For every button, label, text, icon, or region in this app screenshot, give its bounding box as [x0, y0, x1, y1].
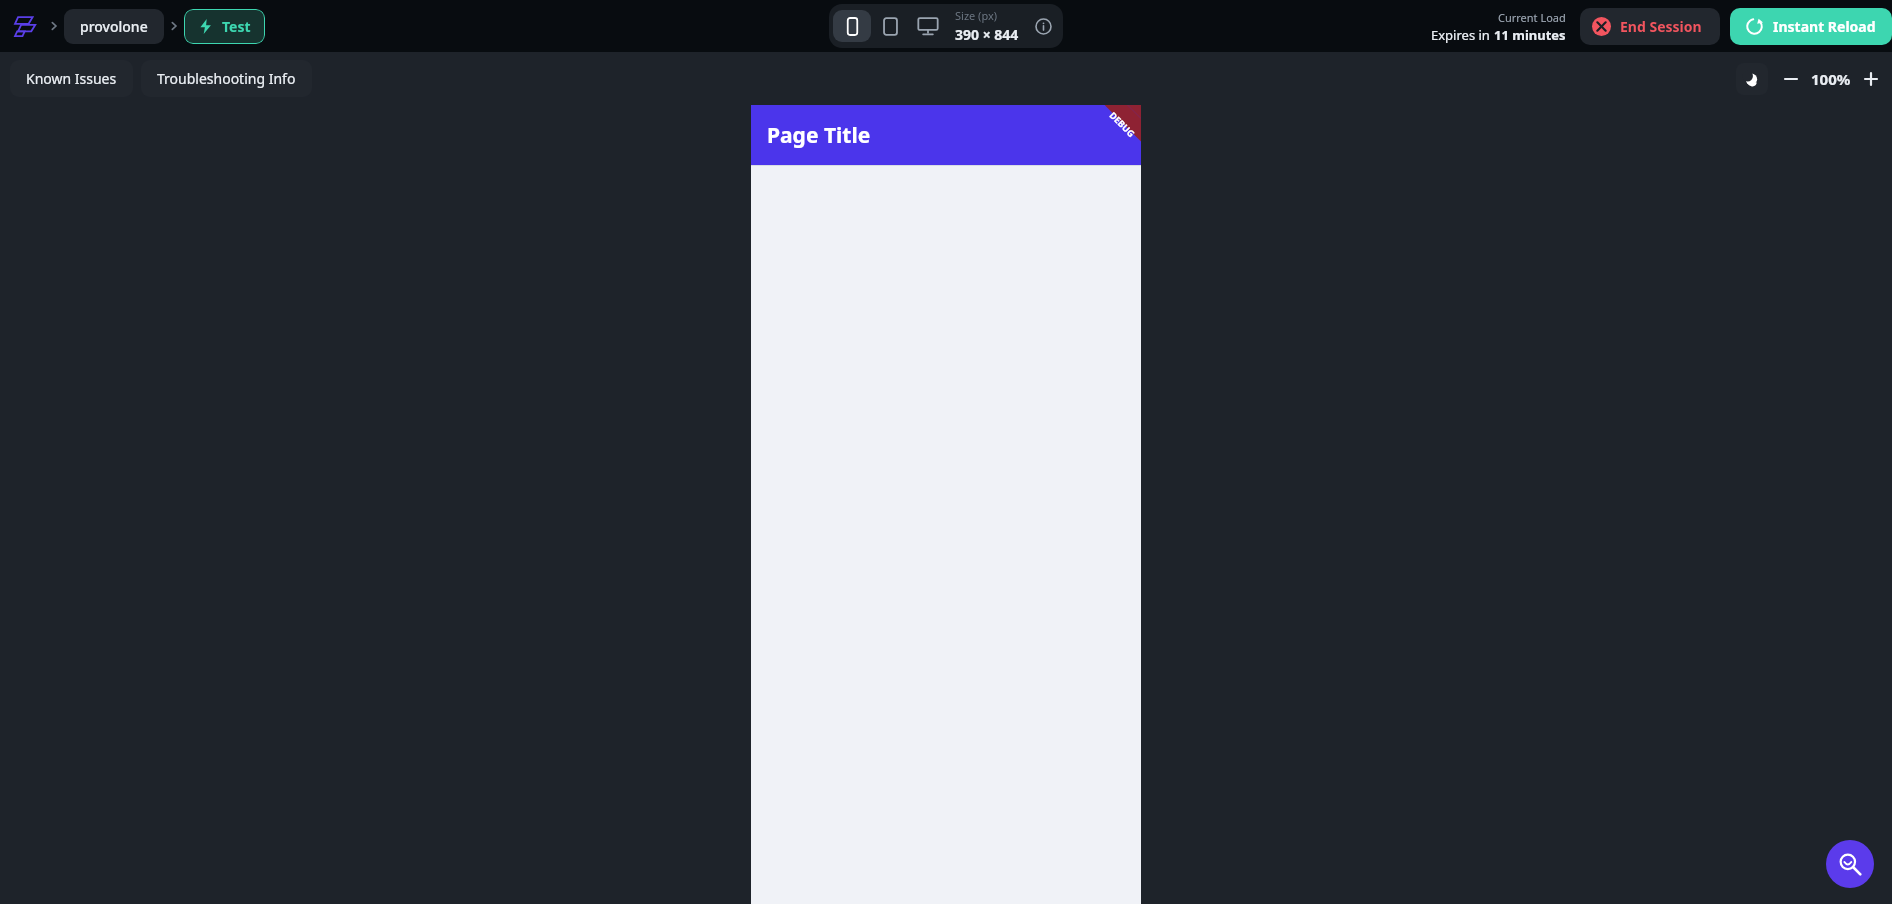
staticText: Page Title	[767, 121, 871, 150]
button[interactable]: Tablet	[871, 10, 909, 42]
staticText: Troubleshooting Info	[157, 69, 296, 88]
staticText: Known Issues	[26, 69, 117, 88]
staticText: Expires in	[1431, 26, 1494, 44]
button[interactable]: Toggle dark mode	[1736, 63, 1768, 95]
button[interactable]: Zoom out	[1778, 66, 1804, 92]
button[interactable]: Home	[8, 8, 44, 44]
button[interactable]: Troubleshooting Info	[141, 60, 312, 97]
button[interactable]: Size info	[1029, 12, 1057, 40]
button[interactable]: Phone	[833, 10, 871, 42]
button[interactable]: Test	[184, 9, 265, 44]
button[interactable]: Known Issues	[10, 60, 133, 97]
button[interactable]: Zoom in	[1858, 66, 1884, 92]
button[interactable]: Search help	[1826, 840, 1874, 888]
staticText: 390 × 844	[955, 25, 1019, 44]
button[interactable]: provolone	[64, 9, 164, 44]
staticText: Instant Reload	[1773, 17, 1876, 36]
staticText: End Session	[1620, 17, 1702, 36]
button[interactable]: Instant Reload	[1730, 8, 1892, 45]
staticText: 100%	[1811, 69, 1851, 89]
staticText: Current Load	[1498, 10, 1566, 25]
staticText: DEBUG	[1107, 109, 1138, 139]
button[interactable]: End Session	[1580, 8, 1720, 45]
staticText: Size (px)	[955, 8, 998, 23]
staticText: 11 minutes	[1494, 26, 1566, 44]
button[interactable]: Desktop	[909, 10, 947, 42]
staticText: provolone	[80, 17, 148, 36]
staticText: Test	[222, 17, 251, 36]
